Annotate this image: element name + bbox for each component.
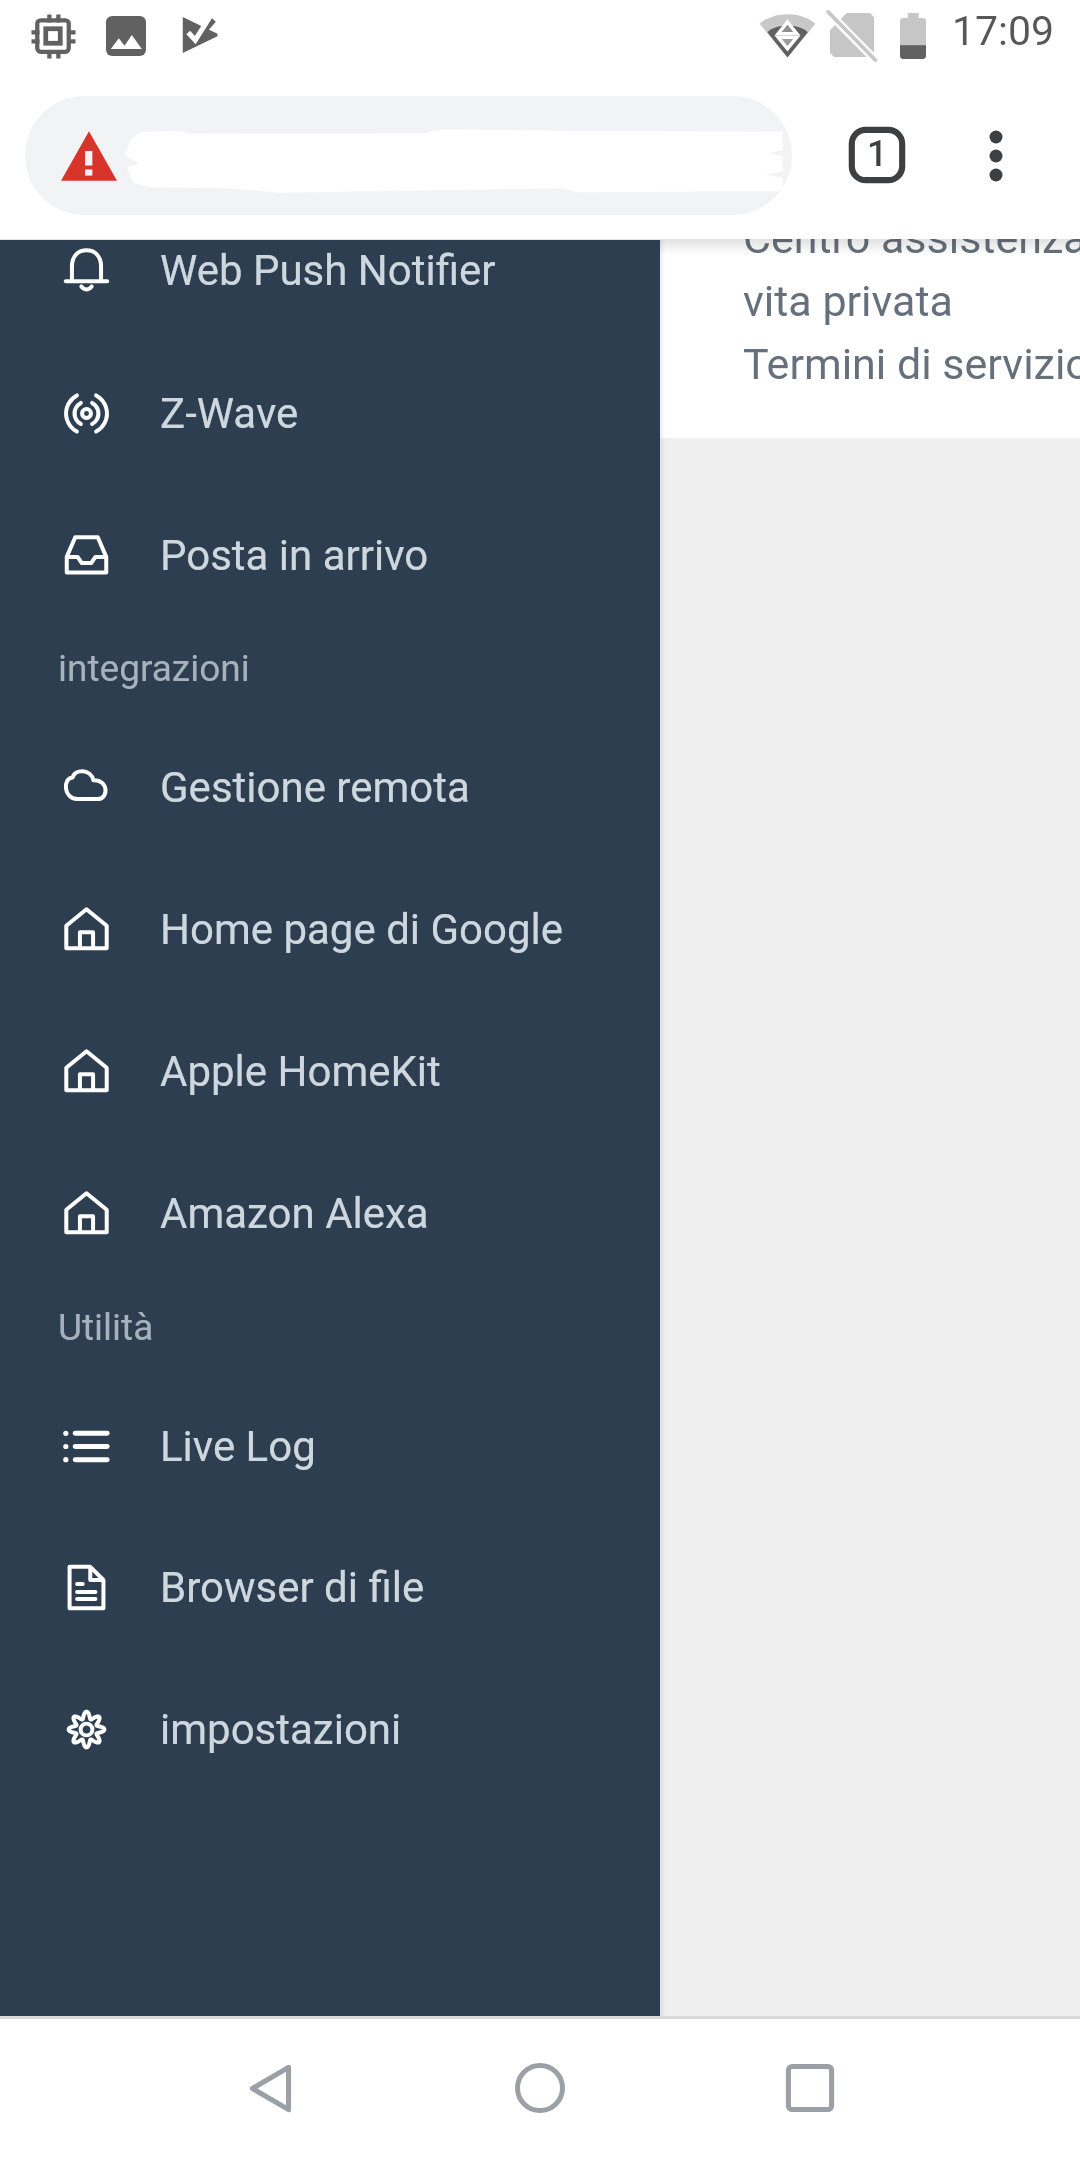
- staticText: vita privata: [743, 276, 953, 326]
- staticText: impostazioni: [160, 1705, 402, 1754]
- staticText: Home page di Google: [160, 905, 564, 954]
- button[interactable]: Live Log: [0, 1406, 660, 1486]
- staticText: Apple HomeKit: [160, 1047, 441, 1096]
- button[interactable]: Amazon Alexa: [0, 1173, 660, 1253]
- staticText: Browser di file: [160, 1563, 425, 1612]
- staticText: Gestione remota: [160, 763, 470, 812]
- staticText: Termini di servizio: [743, 339, 1080, 389]
- button[interactable]: Web Push Notifier: [0, 230, 660, 310]
- button[interactable]: Home: [480, 2028, 600, 2148]
- button[interactable]: Posta in arrivo: [0, 515, 660, 595]
- staticText: integrazioni: [58, 647, 250, 690]
- staticText: Web Push Notifier: [160, 246, 496, 295]
- staticText: Utilità: [58, 1306, 154, 1349]
- staticText: Z-Wave: [160, 389, 299, 438]
- button[interactable]: Recent apps: [750, 2028, 870, 2148]
- staticText: 1: [867, 133, 888, 175]
- staticText: Posta in arrivo: [160, 531, 429, 580]
- button[interactable]: Home page di Google: [0, 889, 660, 969]
- staticText: Live Log: [160, 1422, 316, 1471]
- button[interactable]: Apple HomeKit: [0, 1031, 660, 1111]
- staticText: Centro assistenza: [743, 213, 1080, 263]
- button[interactable]: Gestione remota: [0, 747, 660, 827]
- button[interactable]: impostazioni: [0, 1689, 660, 1769]
- staticText: 17:09: [952, 7, 1055, 55]
- staticText: Amazon Alexa: [160, 1189, 429, 1238]
- button[interactable]: Z-Wave: [0, 373, 660, 453]
- button[interactable]: Back: [210, 2028, 330, 2148]
- button[interactable]: Tabs: [817, 95, 937, 215]
- button[interactable]: More options: [936, 96, 1056, 216]
- button[interactable]: Search or type web address: [25, 96, 792, 215]
- button[interactable]: Browser di file: [0, 1547, 660, 1627]
